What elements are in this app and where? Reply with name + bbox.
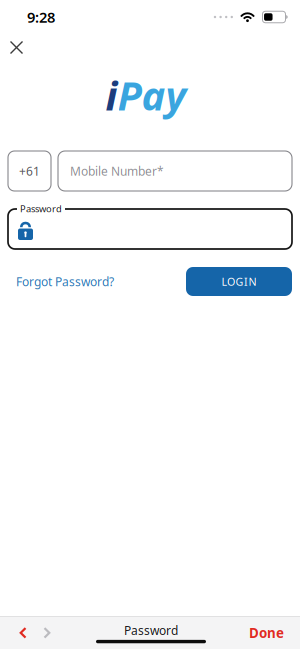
staticText: Password bbox=[20, 202, 62, 215]
button[interactable]: Previous field bbox=[11, 616, 35, 649]
button[interactable]: Mobile Number* bbox=[58, 151, 292, 191]
staticText: Mobile Number* bbox=[70, 163, 164, 179]
staticText: 9:28 bbox=[27, 7, 55, 27]
button[interactable]: +61 bbox=[8, 151, 51, 191]
button[interactable]: Next field bbox=[35, 616, 59, 649]
staticText: Forgot Password? bbox=[16, 273, 114, 289]
staticText: i bbox=[105, 68, 117, 121]
button[interactable]: Done bbox=[249, 624, 284, 642]
staticText: Done bbox=[249, 624, 284, 642]
button[interactable]: Forgot Password? bbox=[16, 273, 114, 289]
staticText: Password bbox=[124, 622, 178, 638]
staticText: LOGIN bbox=[221, 274, 256, 289]
button[interactable]: Password bbox=[8, 209, 292, 249]
staticText: Pay bbox=[117, 68, 186, 121]
button[interactable]: LOGIN bbox=[186, 267, 292, 296]
staticText: +61 bbox=[19, 163, 40, 179]
button[interactable]: Close bbox=[6, 37, 27, 58]
